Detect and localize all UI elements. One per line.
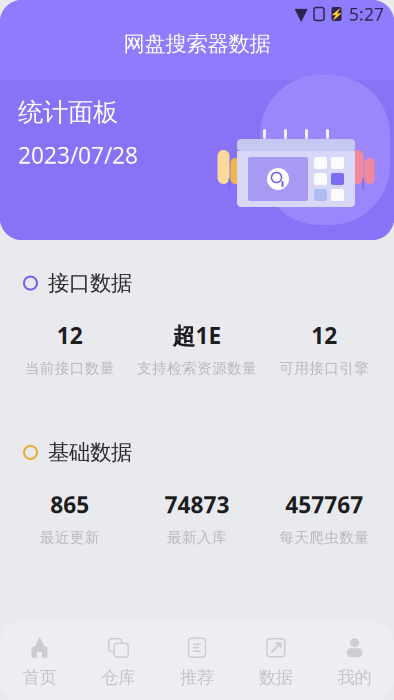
staticText: 接口数据 (48, 270, 132, 296)
staticText: 74873 (164, 489, 229, 520)
staticText: 统计面板 (18, 97, 118, 128)
staticText: 我的 (338, 667, 372, 688)
staticText: 首页 (22, 667, 56, 688)
staticText: 5:27 (349, 2, 384, 25)
staticText: 可用接口引擎 (279, 359, 369, 377)
staticText: ↗ (268, 637, 284, 658)
staticText: 457767 (285, 489, 363, 520)
staticText: 12 (311, 320, 337, 350)
staticText: 最新入库 (167, 529, 227, 547)
staticText: ▲ (32, 632, 46, 653)
staticText: ⚡ (330, 8, 343, 20)
staticText: 当前接口数量 (25, 359, 115, 377)
button[interactable]: 仓库 (79, 634, 158, 690)
button[interactable]: ↗ (236, 634, 315, 690)
staticText: 最近更新 (40, 529, 100, 547)
staticText: 基础数据 (48, 439, 132, 465)
staticText: 支持检索资源数量 (137, 359, 257, 377)
staticText: 数据 (259, 667, 293, 688)
staticText: 网盘搜索器数据 (123, 31, 270, 57)
button[interactable]: ▲ (0, 634, 79, 690)
staticText: 超1E (172, 320, 221, 350)
staticText: 12 (57, 320, 83, 350)
staticText: 2023/07/28 (18, 140, 138, 170)
staticText: 仓库 (101, 667, 135, 688)
button[interactable]: 我的 (315, 634, 394, 690)
staticText: 每天爬虫数量 (279, 529, 369, 547)
button[interactable]: 推荐 (158, 634, 236, 690)
staticText: ▼ (294, 4, 307, 24)
staticText: 865 (50, 489, 89, 520)
staticText: 推荐 (180, 667, 214, 688)
